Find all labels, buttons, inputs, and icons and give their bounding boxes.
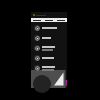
other: Item icon (34, 45, 40, 51)
button[interactable]: Item icon (34, 53, 64, 63)
button[interactable]: Item icon (34, 23, 64, 33)
button[interactable]: Item icon (34, 63, 64, 73)
other: Item icon (34, 35, 40, 41)
other: Item icon (34, 55, 40, 61)
button[interactable]: Item icon (34, 43, 64, 53)
button[interactable]: Item icon (34, 33, 64, 43)
other: Item icon (34, 65, 40, 71)
other: Item icon (34, 25, 40, 31)
